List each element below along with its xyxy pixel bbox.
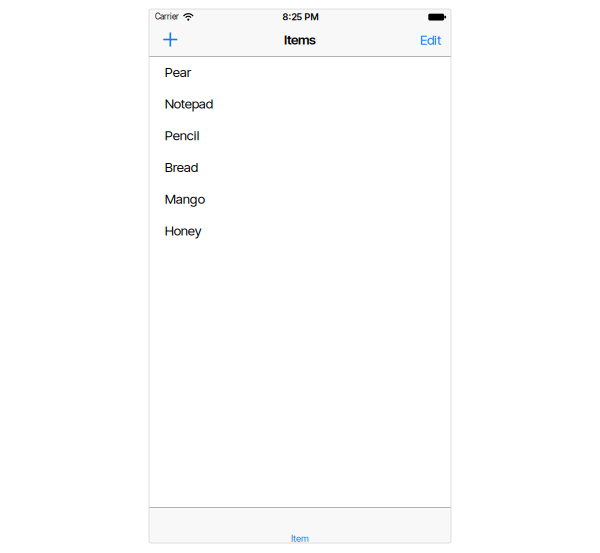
button[interactable]: Item xyxy=(291,533,309,544)
button[interactable]: Honey xyxy=(149,215,451,247)
staticText: Bread xyxy=(165,159,198,175)
button[interactable]: Mango xyxy=(149,184,451,215)
button[interactable]: Edit xyxy=(420,32,441,48)
staticText: Honey xyxy=(165,223,202,238)
button[interactable]: Pear xyxy=(149,57,451,89)
staticText: 8:25 PM xyxy=(282,11,318,22)
staticText: Edit xyxy=(420,32,441,48)
button[interactable]: Pencil xyxy=(149,120,451,152)
staticText: Mango xyxy=(165,191,205,207)
button[interactable]: Bread xyxy=(149,152,451,184)
staticText: Carrier xyxy=(155,12,179,21)
staticText: Item xyxy=(291,533,309,544)
staticText: Pencil xyxy=(165,128,200,143)
staticText: Notepad xyxy=(165,96,213,112)
button[interactable]: Notepad xyxy=(149,89,451,120)
staticText: Pear xyxy=(165,64,191,80)
button[interactable]: Add xyxy=(163,32,178,47)
staticText: Items xyxy=(284,32,316,47)
